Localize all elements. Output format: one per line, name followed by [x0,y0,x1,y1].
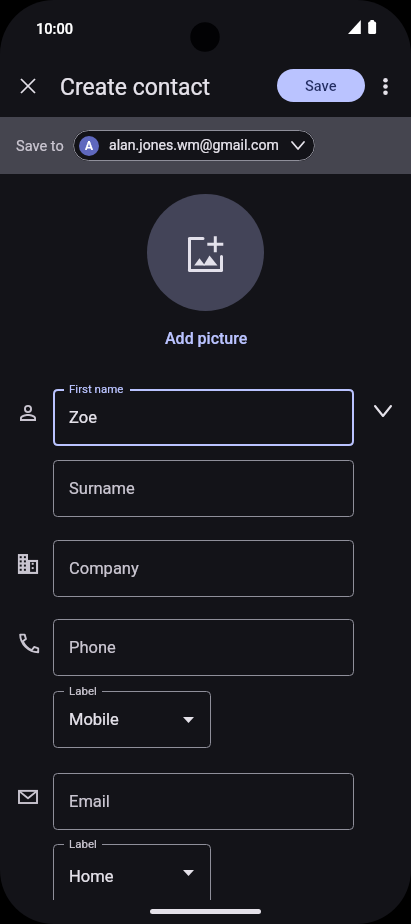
staticText: Label [69,684,97,697]
staticText: A [85,139,93,153]
staticText: alan.jones.wm@gmail.com [109,137,279,154]
button[interactable]: Email [53,773,354,830]
staticText: Zoe [69,408,97,427]
button[interactable]: Close [12,70,44,102]
button[interactable]: Save [277,69,365,102]
button[interactable]: Add picture [160,325,252,351]
staticText: Save to [16,137,64,154]
staticText: Home [69,867,114,886]
staticText: Company [69,559,139,578]
staticText: Mobile [69,710,119,729]
button[interactable]: Label [53,844,211,900]
staticText: Email [69,792,110,811]
staticText: Save [305,77,337,94]
staticText: Label [69,837,97,850]
button[interactable]: Surname [53,460,354,517]
staticText: 10:00 [36,20,74,37]
staticText: Phone [69,638,116,657]
staticText: First name [69,382,124,395]
staticText: Add picture [165,329,248,348]
button[interactable]: First name [53,389,354,446]
button[interactable]: Add picture [147,194,264,311]
button[interactable]: More options [369,70,401,102]
button[interactable]: A [73,130,315,161]
button[interactable]: Expand name fields [371,399,395,423]
staticText: Surname [69,479,135,498]
staticText: Create contact [60,74,211,101]
button[interactable]: Company [53,540,354,597]
button[interactable]: Phone [53,619,354,676]
button[interactable]: Label [53,691,211,748]
